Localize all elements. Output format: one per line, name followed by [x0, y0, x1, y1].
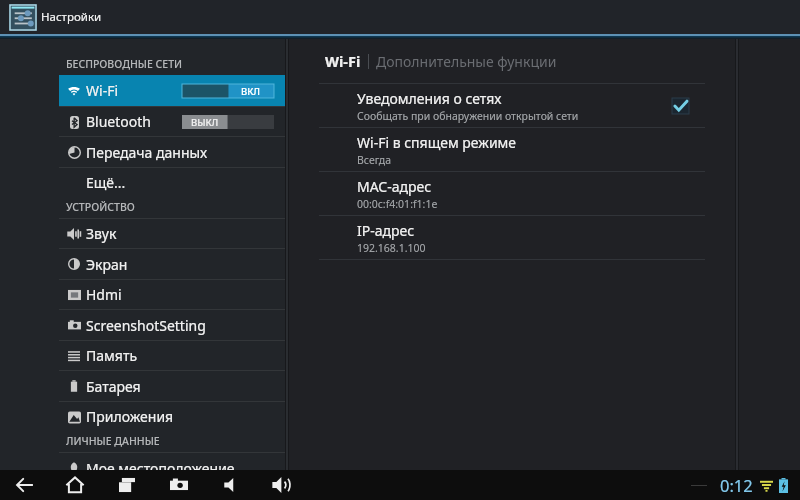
staticText: Мое местоположение: [86, 459, 235, 478]
button[interactable]: Звук: [0, 219, 285, 248]
button[interactable]: Wi-Fi: [325, 51, 361, 71]
button[interactable]: Screenshot: [162, 470, 196, 500]
staticText: Звук: [86, 224, 117, 243]
staticText: Сообщать при обнаружении открытой сети: [357, 109, 579, 123]
staticText: 00:0c:f4:01:f1:1e: [357, 197, 438, 211]
button[interactable]: Back: [8, 470, 42, 500]
button[interactable]: Volume down: [214, 470, 248, 500]
button[interactable]: Мое местоположение: [0, 453, 285, 483]
staticText: Уведомления о сетях: [357, 89, 502, 108]
staticText: Память: [86, 346, 138, 365]
button[interactable]: Wi-Fi в спящем режиме: [289, 128, 800, 172]
staticText: Hdmi: [86, 285, 122, 304]
staticText: Приложения: [86, 407, 174, 426]
staticText: ЛИЧНЫЕ ДАННЫЕ: [66, 434, 160, 448]
staticText: Дополнительные функции: [376, 52, 557, 71]
button[interactable]: Дополнительные функции: [376, 52, 557, 71]
staticText: Передача данных: [86, 143, 208, 162]
button[interactable]: Volume up: [264, 470, 298, 500]
staticText: Wi-Fi: [325, 51, 361, 71]
button[interactable]: Wi-Fi: [0, 75, 285, 106]
button[interactable]: Экран: [0, 249, 285, 279]
staticText: 0:12: [720, 474, 753, 496]
staticText: MAC-адрес: [357, 177, 432, 196]
staticText: 192.168.1.100: [357, 241, 426, 255]
staticText: ВЫКЛ: [191, 116, 219, 129]
button[interactable]: Hdmi: [0, 280, 285, 309]
button[interactable]: Settings app icon: [10, 5, 36, 30]
button[interactable]: Передача данных: [0, 137, 285, 167]
staticText: ScreenshotSetting: [86, 316, 206, 335]
button[interactable]: On: [182, 84, 274, 98]
staticText: Настройки: [41, 9, 102, 25]
button[interactable]: Off: [182, 115, 274, 129]
staticText: Всегда: [357, 153, 392, 167]
button[interactable]: Ещё...: [0, 168, 285, 197]
staticText: Ещё...: [86, 173, 126, 192]
staticText: IP-адрес: [357, 221, 415, 240]
staticText: Wi-Fi: [86, 81, 119, 100]
button[interactable]: Батарея: [0, 371, 285, 401]
staticText: ВКЛ: [241, 85, 261, 98]
button[interactable]: ScreenshotSetting: [0, 310, 285, 340]
button[interactable]: Уведомления о сетях: [289, 84, 800, 128]
staticText: Bluetooth: [86, 112, 151, 131]
staticText: БЕСПРОВОДНЫЕ СЕТИ: [66, 57, 183, 71]
button[interactable]: Приложения: [0, 402, 285, 431]
button[interactable]: Bluetooth: [0, 107, 285, 136]
staticText: Экран: [86, 255, 128, 274]
button[interactable]: IP-адрес: [289, 216, 800, 260]
staticText: Wi-Fi в спящем режиме: [357, 133, 517, 152]
button[interactable]: Home: [58, 470, 92, 500]
staticText: Батарея: [86, 377, 141, 396]
button[interactable]: Recent apps: [110, 470, 144, 500]
button[interactable]: Toggle network notification: [672, 98, 689, 114]
button[interactable]: Память: [0, 341, 285, 370]
button[interactable]: MAC-адрес: [289, 172, 800, 216]
staticText: УСТРОЙСТВО: [66, 200, 135, 214]
